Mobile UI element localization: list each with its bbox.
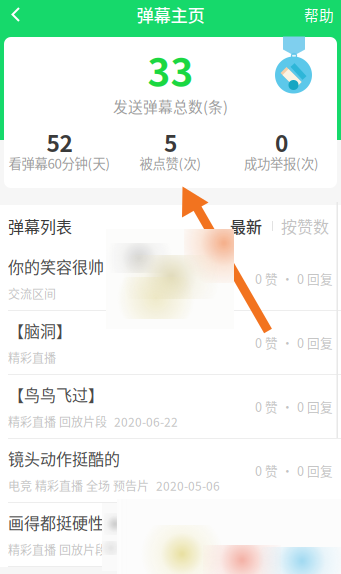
button[interactable]: 按赞数 (279, 214, 331, 238)
staticText: 电竞 精彩直播 全场 预告片 (8, 477, 149, 494)
staticText: 弹幕主页 (136, 2, 204, 27)
staticText: 发送弹幕总数(条) (113, 95, 228, 117)
staticText: 0 赞 · 0 回复 (255, 333, 333, 352)
staticText: 被点赞(次) (139, 153, 201, 173)
staticText: 最新 (230, 214, 262, 238)
button[interactable]: 帮助 (297, 0, 341, 29)
staticText: 【鸟鸟飞过】 (8, 383, 104, 406)
staticText: 0 赞 · 0 回复 (255, 461, 333, 480)
staticText: 精彩直播 回放片段 (8, 541, 107, 558)
staticText: 0 赞 · 0 回复 (255, 269, 333, 288)
staticText: 交流区间 (8, 285, 56, 302)
staticText: 精彩直播 回放片段 (8, 413, 107, 430)
staticText: 52 (46, 126, 72, 158)
button[interactable]: 镜头动作挺酷的 (0, 439, 341, 503)
staticText: 弹幕列表 (8, 214, 72, 238)
staticText: 5 (164, 126, 177, 158)
staticText: 【脑洞】 (8, 319, 72, 342)
staticText: 成功举报(次) (244, 153, 319, 173)
staticText: 精彩直播 (8, 349, 56, 366)
button[interactable]: 【鸟鸟飞过】 (0, 375, 341, 439)
staticText: 33 (147, 42, 193, 98)
staticText: 按赞数 (281, 214, 329, 238)
staticText: 镜头动作挺酷的 (8, 447, 120, 470)
staticText: 看弹幕60分钟(天) (8, 153, 110, 173)
staticText: 0 赞 · 0 回复 (255, 397, 333, 416)
button[interactable]: 画得都挺硬性哦 (0, 503, 341, 567)
button[interactable]: Back (0, 0, 32, 29)
staticText: 2020-05-06 (156, 477, 220, 494)
button[interactable]: 你的笑容很帅 (0, 247, 341, 311)
staticText: 画得都挺硬性哦 (8, 511, 120, 534)
staticText: 0 (275, 126, 288, 158)
staticText: 2020-06-22 (114, 413, 178, 430)
button[interactable]: 最新 (226, 214, 266, 238)
staticText: 帮助 (304, 4, 334, 25)
button[interactable]: 【脑洞】 (0, 311, 341, 375)
staticText: 你的笑容很帅 (8, 255, 104, 278)
